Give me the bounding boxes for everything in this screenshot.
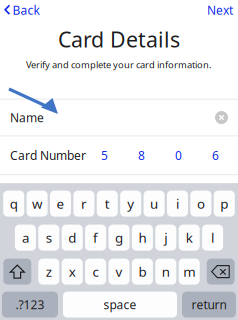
button[interactable]: Delete	[207, 259, 235, 285]
staticText: 5	[101, 147, 108, 163]
button[interactable]: i	[167, 191, 188, 217]
button[interactable]: h	[132, 225, 153, 251]
staticText: t	[105, 195, 110, 212]
staticText: Name	[10, 110, 44, 125]
button[interactable]: m	[179, 259, 200, 285]
button[interactable]: c	[85, 259, 106, 285]
staticText: p	[220, 195, 228, 212]
staticText: l	[211, 229, 214, 246]
button[interactable]: Next	[202, 1, 238, 19]
staticText: y	[127, 195, 134, 212]
button[interactable]: Shift	[3, 259, 31, 285]
button[interactable]: d	[62, 225, 83, 251]
staticText: Card Details	[58, 25, 180, 53]
button[interactable]: return	[182, 292, 236, 318]
staticText: z	[46, 263, 52, 280]
button[interactable]: e	[50, 191, 71, 217]
staticText: f	[93, 229, 98, 246]
staticText: 6	[212, 147, 219, 163]
staticText: 0	[175, 147, 182, 163]
staticText: j	[164, 229, 167, 246]
staticText: k	[186, 229, 193, 246]
staticText: Card Number	[10, 147, 86, 163]
staticText: n	[162, 263, 170, 280]
staticText: Verify and complete your card informatio…	[26, 58, 212, 71]
button[interactable]: Back	[0, 1, 43, 19]
staticText: space	[103, 297, 136, 313]
button[interactable]: t	[97, 191, 118, 217]
staticText: u	[150, 195, 158, 212]
button[interactable]: f	[85, 225, 106, 251]
staticText: m	[183, 263, 195, 280]
button[interactable]: v	[108, 259, 129, 285]
button[interactable]: n	[155, 259, 176, 285]
staticText: 8	[138, 147, 145, 163]
button[interactable]: a	[15, 225, 36, 251]
button[interactable]: y	[120, 191, 141, 217]
button[interactable]: .?123	[2, 292, 58, 318]
staticText: return	[191, 297, 226, 313]
staticText: x	[69, 263, 76, 280]
staticText: s	[46, 229, 52, 246]
button[interactable]: w	[27, 191, 48, 217]
staticText: c	[93, 263, 99, 280]
button[interactable]: u	[144, 191, 165, 217]
staticText: b	[138, 263, 146, 280]
button[interactable]: j	[155, 225, 176, 251]
staticText: w	[32, 195, 42, 212]
button[interactable]: b	[132, 259, 153, 285]
button[interactable]: r	[73, 191, 94, 217]
staticText: .?123	[15, 297, 44, 313]
button[interactable]: o	[190, 191, 211, 217]
button[interactable]: p	[214, 191, 235, 217]
button[interactable]: l	[202, 225, 223, 251]
button[interactable]: s	[38, 225, 59, 251]
staticText: v	[115, 263, 122, 280]
staticText: Next	[207, 2, 233, 18]
button[interactable]: x	[62, 259, 83, 285]
button[interactable]: k	[179, 225, 200, 251]
staticText: i	[176, 195, 179, 212]
button[interactable]: space	[63, 292, 177, 318]
button[interactable]: z	[38, 259, 59, 285]
staticText: a	[22, 229, 29, 246]
button[interactable]: g	[108, 225, 129, 251]
staticText: g	[115, 229, 123, 246]
button[interactable]: q	[3, 191, 24, 217]
staticText: h	[138, 229, 146, 246]
staticText: e	[56, 195, 64, 212]
staticText: q	[10, 195, 18, 212]
staticText: o	[197, 195, 205, 212]
staticText: Back	[12, 2, 39, 18]
staticText: d	[68, 229, 76, 246]
staticText: r	[81, 195, 87, 212]
